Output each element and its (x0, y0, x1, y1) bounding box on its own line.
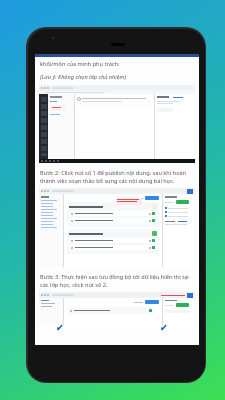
button[interactable] (39, 188, 195, 267)
button[interactable] (39, 292, 195, 330)
staticText: (Lưu ý: Không chọn lớp chủ nhiệm) (40, 73, 127, 81)
staticText: Bước 3: Thực hiện sao lưu đồng bộ tới dữ… (40, 273, 189, 288)
staticText: khối/môn của mình phụ trách: (40, 60, 120, 68)
button[interactable] (39, 85, 195, 163)
staticText: Bước 2: Click nút số 1 để publish nội du… (40, 169, 187, 184)
